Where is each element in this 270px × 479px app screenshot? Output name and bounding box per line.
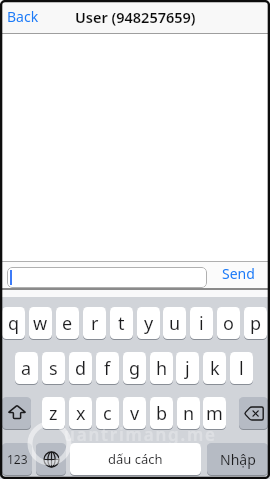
button[interactable]: b [150,397,173,429]
staticText: q [8,311,20,336]
staticText: i [199,311,204,336]
staticText: s [49,356,58,381]
staticText: z [49,401,58,426]
button[interactable]: Nhập [207,443,268,475]
button[interactable]: Back [0,7,32,26]
staticText: c [103,401,112,426]
staticText: h [156,356,168,381]
staticText: Nhập [220,450,256,469]
staticText: k [210,356,220,381]
staticText: b [156,401,168,426]
button[interactable]: i [190,307,213,339]
staticText: f [104,356,111,381]
button[interactable]: v [123,397,146,429]
button[interactable]: d [69,352,92,384]
staticText: Back [7,7,39,26]
staticText: w [33,311,48,336]
staticText: y [144,311,154,336]
button[interactable]: y [137,307,160,339]
button[interactable]: o [217,307,240,339]
button[interactable]: c [96,397,119,429]
button[interactable]: e [56,307,79,339]
button[interactable]: p [244,307,267,339]
button[interactable]: x [69,397,92,429]
staticText: dấu cách [108,450,163,468]
button[interactable]: z [42,397,65,429]
staticText: u [169,311,181,336]
staticText: v [130,401,140,426]
button[interactable]: k [203,352,226,384]
staticText: n [183,401,195,426]
button[interactable]: a [15,352,38,384]
staticText: p [250,311,262,336]
staticText: g [129,356,141,381]
staticText: r [91,311,99,336]
button[interactable]: f [96,352,119,384]
button[interactable]: g [123,352,146,384]
staticText: m [206,401,223,426]
button[interactable]: s [42,352,65,384]
button[interactable]: 123 [2,443,32,475]
button[interactable] [239,397,268,429]
button[interactable]: q [2,307,25,339]
staticText: d [75,356,87,381]
staticText: j [185,356,190,381]
staticText: a [21,356,32,381]
staticText: 123 [7,451,28,467]
staticText: l [239,356,244,381]
button[interactable]: h [150,352,173,384]
button[interactable]: u [163,307,186,339]
staticText: x [76,401,86,426]
button[interactable]: j [176,352,199,384]
button[interactable] [2,397,31,429]
button[interactable]: r [83,307,106,339]
staticText: t [118,311,125,336]
staticText: User (948257659) [75,7,196,27]
button[interactable]: n [177,397,200,429]
button[interactable]: dấu cách [70,443,201,475]
staticText: uantrimang.me [64,423,217,446]
button[interactable]: m [203,397,226,429]
button[interactable]: Send [207,262,270,284]
staticText: Send [222,264,255,283]
button[interactable]: l [230,352,253,384]
button[interactable]: w [29,307,52,339]
button[interactable] [36,443,66,475]
staticText: o [223,311,234,336]
button[interactable]: t [110,307,133,339]
staticText: e [62,311,73,336]
